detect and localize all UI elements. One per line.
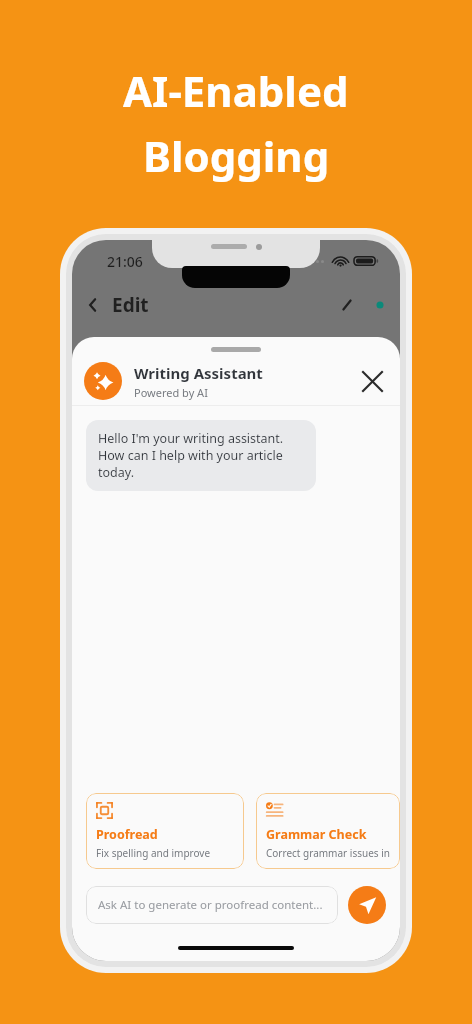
staticText: Correct grammar issues in your writing	[266, 846, 390, 860]
staticText: Powered by AI	[134, 385, 208, 400]
staticText: Proofread	[96, 826, 158, 843]
staticText: Writing Assistant	[134, 363, 263, 383]
staticText: Hello I'm your writing assistant. How ca…	[98, 430, 304, 481]
button[interactable]: Close	[352, 361, 392, 401]
button[interactable]: Ask AI to generate or proofread content.…	[86, 886, 338, 924]
staticText: Ask AI to generate or proofread content.…	[98, 897, 323, 913]
staticText: Grammar Check	[266, 826, 367, 843]
staticText: Blogging	[143, 127, 330, 184]
button[interactable]: Send	[348, 886, 386, 924]
staticText: 21:06	[107, 252, 143, 271]
staticText: AI-Enabled	[123, 62, 349, 119]
button[interactable]: Proofread	[86, 793, 244, 869]
button[interactable]: Grammar Check	[256, 793, 400, 869]
staticText: Fix spelling and improve your text	[96, 846, 234, 860]
staticText: Edit	[112, 292, 149, 318]
